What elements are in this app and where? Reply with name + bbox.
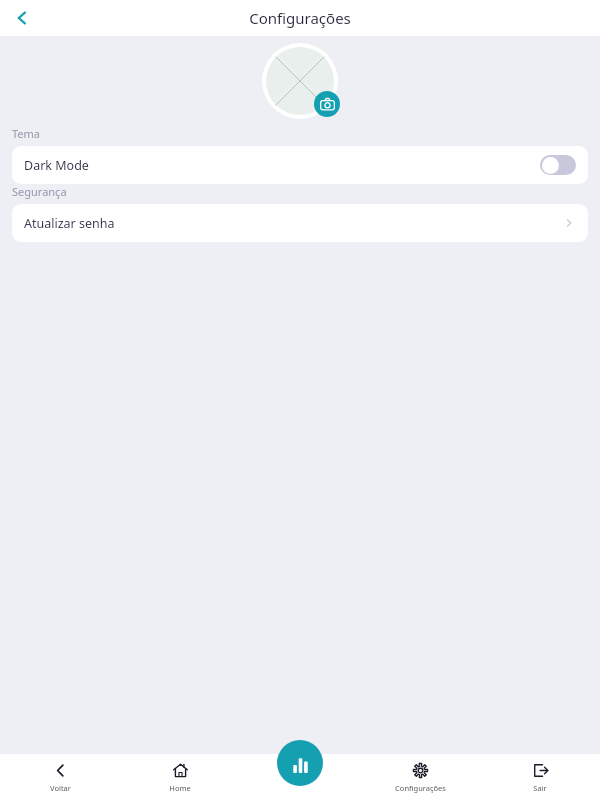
button[interactable]: Home	[120, 754, 240, 800]
button[interactable]: Configurações	[360, 754, 480, 800]
staticText: Sair	[533, 783, 547, 793]
staticText: Atualizar senha	[24, 215, 115, 232]
button[interactable]: Dark Mode	[12, 146, 588, 184]
staticText: Voltar	[50, 783, 71, 793]
button[interactable]: Statistics	[277, 740, 323, 786]
staticText: Dark Mode	[24, 157, 89, 174]
staticText: Configurações	[249, 8, 351, 28]
button[interactable]: Sair	[480, 754, 600, 800]
staticText: Configurações	[395, 783, 446, 793]
button[interactable]: Change profile photo	[262, 43, 338, 119]
staticText: Home	[169, 783, 191, 793]
button[interactable]: Back	[0, 0, 44, 36]
button[interactable]: Voltar	[0, 754, 120, 800]
staticText: Tema	[12, 126, 41, 141]
button[interactable]: Atualizar senha	[12, 204, 588, 242]
staticText: Segurança	[12, 184, 67, 199]
